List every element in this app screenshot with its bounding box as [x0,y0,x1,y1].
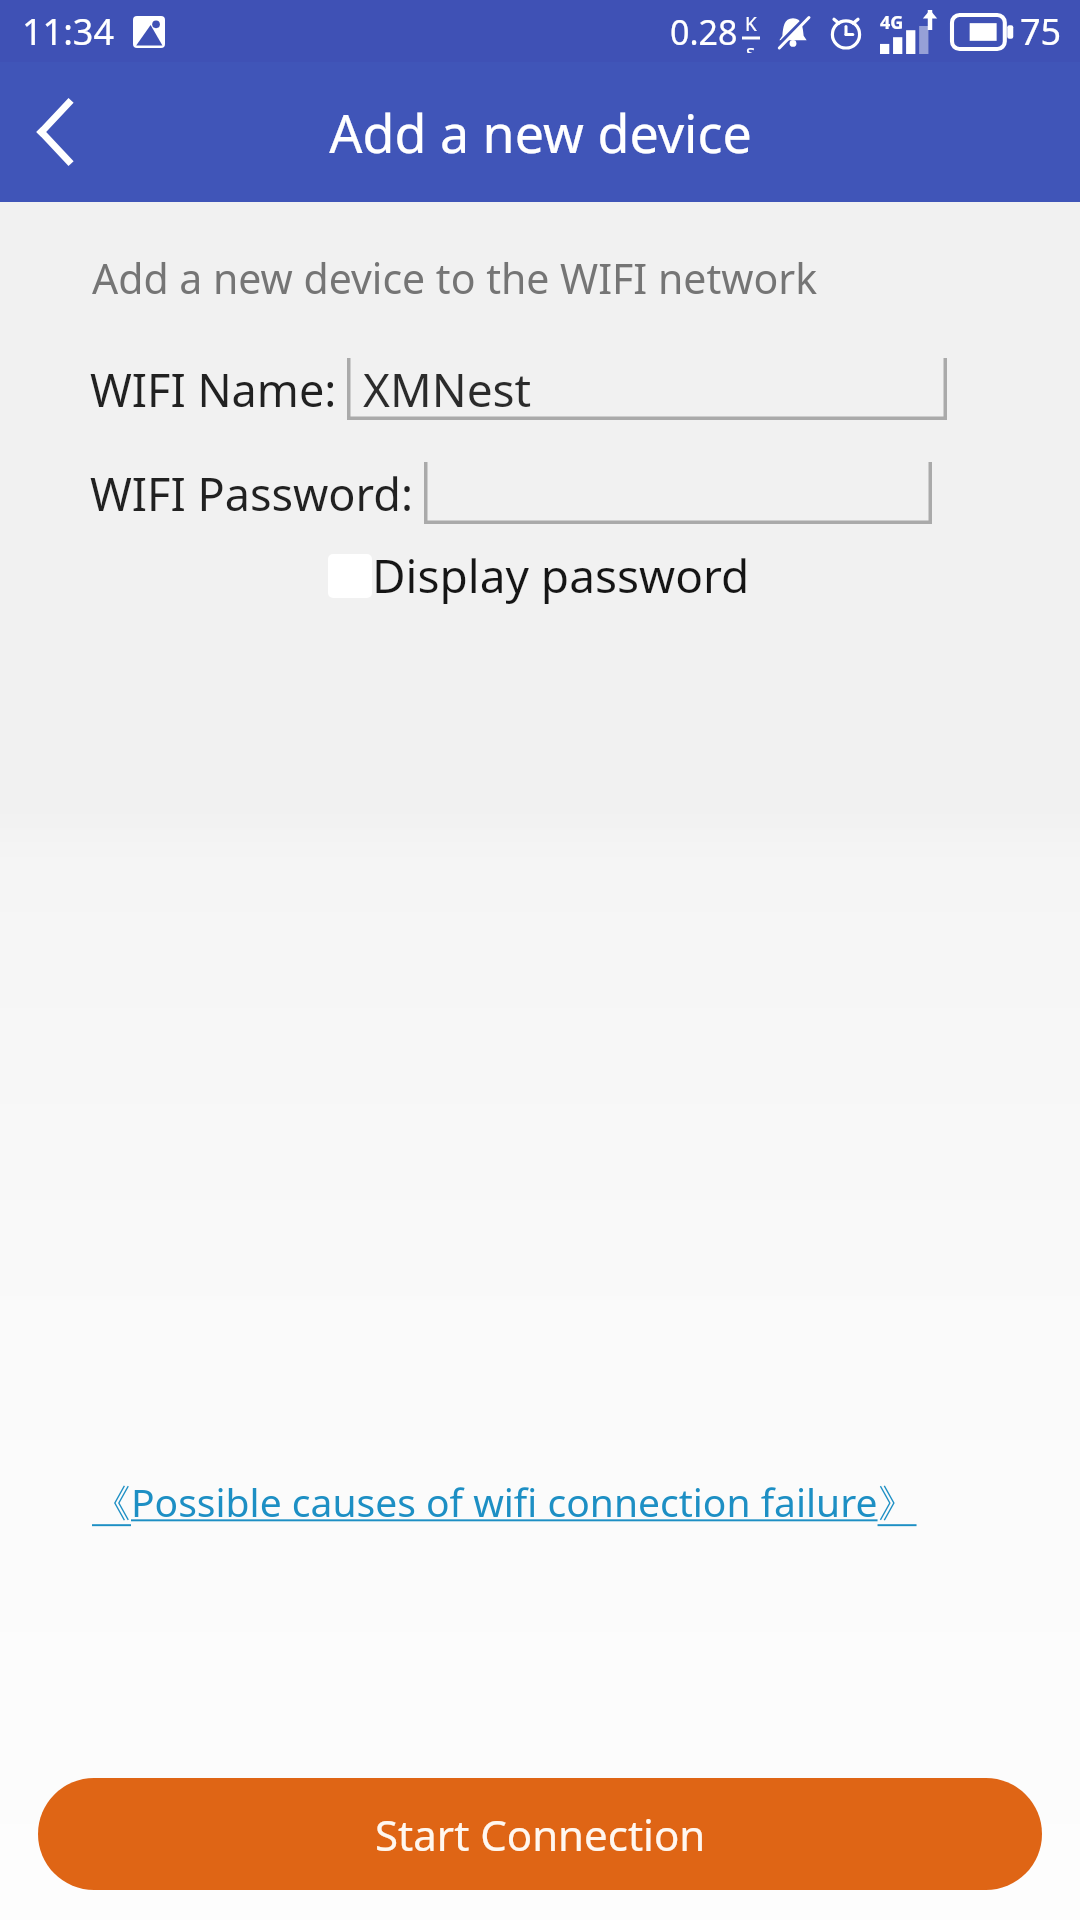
button[interactable]: Display password [328,544,750,607]
staticText: Add a new device to the WIFI network [92,250,818,306]
staticText: 4G [880,10,904,35]
staticText: 75 [1020,7,1062,56]
staticText: Add a new device [329,97,752,168]
button[interactable]: Back [0,77,110,187]
button[interactable]: Start Connection [38,1778,1042,1890]
button[interactable]: XMNest [347,358,947,420]
staticText: 0.28 [670,9,738,55]
staticText: WIFI Password: [90,463,414,524]
staticText: Start Connection [375,1806,706,1863]
staticText: s [746,39,756,53]
button[interactable]: 《Possible causes of wifi connection fail… [88,1473,921,1530]
staticText: 《Possible causes of wifi connection fail… [92,1475,917,1528]
staticText: K [745,11,757,37]
staticText: XMNest [363,358,532,414]
staticText: 11:34 [22,7,115,56]
staticText: Display password [372,544,750,607]
staticText: WIFI Name: [90,359,337,420]
button[interactable] [424,462,932,524]
